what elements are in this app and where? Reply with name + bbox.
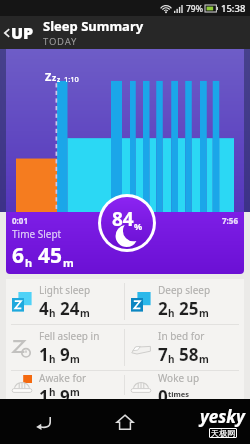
staticText: 1 [39,343,49,366]
staticText: 9 [60,385,70,399]
staticText: TODAY [43,35,78,48]
staticText: Time Slept [12,227,62,241]
staticText: 84 [112,206,134,232]
staticText: m [80,306,90,320]
staticText: h [49,385,56,399]
staticText: 79% [186,3,203,15]
staticText: m [70,352,80,366]
button[interactable]: Woke up [125,371,244,399]
staticText: 45 [38,241,63,270]
staticText: 25 [179,297,199,320]
staticText: Awake for [39,371,87,385]
staticText: yesky [200,405,245,428]
button[interactable]: Back [0,16,250,49]
button[interactable]: Fell asleep in [6,325,124,370]
button[interactable]: In bed for [125,325,244,370]
staticText: 0 [158,385,168,399]
staticText: Light sleep [39,283,91,297]
staticText: 2 [158,297,168,320]
button[interactable]: Awake for [6,371,124,399]
staticText: % [134,220,143,232]
staticText: 7:56 [222,215,238,226]
staticText: 15:38 [221,2,246,15]
staticText: 0:01 [12,215,28,226]
other: Back [3,26,11,40]
staticText: h [25,255,33,270]
staticText: Woke up [158,371,200,385]
staticText: Sleep Summary [43,17,144,35]
button[interactable]: Back [23,402,63,442]
staticText: Z [45,69,52,84]
staticText: 1 [39,385,49,399]
staticText: h [168,306,175,320]
staticText: m [199,352,209,366]
staticText: 24 [60,297,80,320]
button[interactable]: Light sleep [6,279,124,324]
staticText: 58 [179,343,199,366]
button[interactable]: Home [105,402,145,442]
staticText: UP [11,22,34,44]
staticText: Deep sleep [158,283,211,297]
staticText: m [63,255,74,270]
staticText: m [70,385,80,399]
staticText: 9 [60,343,70,366]
staticText: 4 [39,297,49,320]
staticText: Fell asleep in [39,329,100,343]
staticText: z [52,72,57,84]
staticText: 1:10 [64,74,79,84]
staticText: m [199,306,209,320]
staticText: 7 [158,343,168,366]
staticText: times [168,389,190,399]
button[interactable]: Deep sleep [125,279,244,324]
staticText: h [168,352,175,366]
staticText: z [57,75,61,84]
button[interactable]: Sleep score 84 percent [101,197,153,249]
staticText: 6 [12,241,25,270]
staticText: h [49,352,56,366]
staticText: h [49,306,56,320]
staticText: In bed for [158,329,205,343]
staticText: 天极网 [211,428,235,438]
button[interactable]: 0:01 [6,212,244,274]
